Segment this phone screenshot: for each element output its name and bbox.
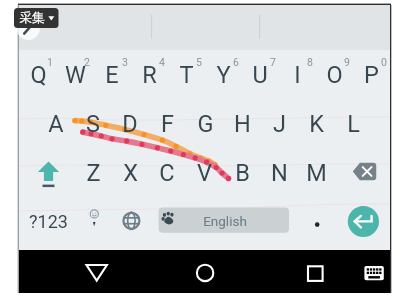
staticText: 5 — [196, 56, 202, 68]
staticText: G — [197, 110, 214, 138]
button[interactable]: G — [186, 100, 223, 150]
button[interactable]: Q — [19, 50, 56, 100]
button[interactable]: F — [149, 100, 186, 150]
staticText: O — [326, 61, 343, 89]
button[interactable]: V — [186, 150, 223, 200]
staticText: 0 — [381, 56, 387, 68]
staticText: E — [105, 61, 119, 89]
button[interactable]: P — [353, 50, 390, 100]
button[interactable]: 采集 — [14, 8, 59, 28]
button[interactable]: B — [223, 150, 260, 200]
staticText: 4 — [159, 56, 165, 68]
staticText: F — [161, 110, 174, 138]
staticText: 采集 — [19, 10, 45, 26]
staticText: N — [271, 159, 288, 187]
staticText: K — [309, 110, 324, 138]
staticText: 7 — [270, 56, 276, 68]
button[interactable]: K — [297, 100, 334, 150]
staticText: A — [48, 110, 64, 138]
staticText: 9 — [344, 56, 350, 68]
staticText: ?123 — [29, 211, 68, 232]
button[interactable]: Change keyboard language — [112, 200, 149, 250]
button[interactable]: Z — [75, 150, 112, 200]
button[interactable]: W — [56, 50, 93, 100]
staticText: D — [122, 110, 138, 138]
staticText: U — [252, 61, 268, 89]
button[interactable]: Delete — [334, 150, 390, 200]
staticText: 3 — [122, 56, 128, 68]
button[interactable]: Home — [186, 250, 224, 293]
staticText: I — [294, 61, 301, 89]
button[interactable]: A — [38, 100, 75, 150]
button[interactable]: C — [149, 150, 186, 200]
staticText: V — [197, 159, 212, 187]
button[interactable]: X — [112, 150, 149, 200]
staticText: 6 — [233, 56, 239, 68]
staticText: C — [159, 159, 175, 187]
button[interactable]: I — [279, 50, 316, 100]
staticText: 2 — [84, 56, 90, 68]
button[interactable]: L — [334, 100, 371, 150]
staticText: M — [306, 159, 327, 187]
button[interactable]: J — [260, 100, 297, 150]
button[interactable]: Suggestion 1 — [19, 5, 151, 50]
button[interactable]: S — [75, 100, 112, 150]
button[interactable]: R — [130, 50, 167, 100]
button[interactable]: H — [223, 100, 260, 150]
staticText: Y — [216, 61, 231, 89]
staticText: L — [347, 110, 360, 138]
staticText: 1 — [47, 56, 53, 68]
staticText: J — [273, 110, 286, 138]
button[interactable]: Space, English — [149, 200, 297, 250]
button[interactable]: Period — [297, 200, 334, 250]
button[interactable]: Symbols — [19, 200, 75, 250]
button[interactable]: Recent apps — [296, 250, 334, 293]
staticText: Z — [86, 159, 101, 187]
button[interactable]: Y — [205, 50, 242, 100]
button[interactable]: O — [316, 50, 353, 100]
staticText: S — [86, 110, 100, 138]
staticText: T — [179, 61, 194, 89]
button[interactable]: M — [297, 150, 334, 200]
button[interactable]: Shift — [19, 150, 75, 200]
staticText: X — [123, 159, 138, 187]
button[interactable]: Back — [78, 250, 116, 293]
staticText: W — [65, 61, 86, 89]
button[interactable]: U — [242, 50, 279, 100]
button[interactable]: T — [167, 50, 204, 100]
staticText: 8 — [307, 56, 313, 68]
staticText: English — [203, 213, 247, 229]
button[interactable]: Enter — [334, 200, 390, 250]
staticText: H — [234, 110, 251, 138]
button[interactable]: Switch keyboard — [356, 250, 390, 293]
staticText: Q — [30, 61, 47, 89]
staticText: P — [364, 61, 379, 89]
button[interactable]: Emoji and comma — [75, 200, 112, 250]
button[interactable]: E — [93, 50, 130, 100]
staticText: R — [142, 61, 157, 89]
button[interactable]: D — [112, 100, 149, 150]
button[interactable]: N — [260, 150, 297, 200]
staticText: B — [235, 159, 250, 187]
